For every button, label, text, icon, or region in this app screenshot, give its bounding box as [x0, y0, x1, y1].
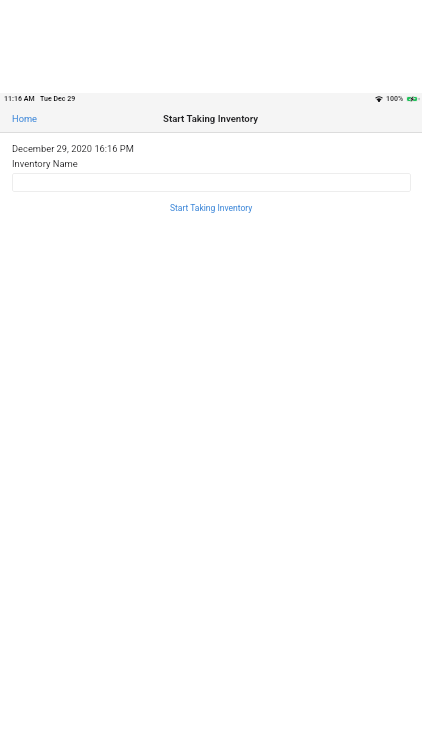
staticText: Inventory Name [12, 158, 78, 169]
staticText: 100% [386, 95, 404, 103]
staticText: Home [12, 113, 38, 124]
button[interactable]: Home [0, 109, 50, 128]
staticText: December 29, 2020 16:16 PM [12, 143, 134, 154]
staticText: 11:16 AM [4, 95, 35, 103]
staticText: Tue Dec 29 [40, 95, 76, 103]
button[interactable]: Start Taking Inventory [160, 201, 263, 215]
button[interactable]: Inventory name input [12, 173, 411, 192]
staticText: Start Taking Inventory [163, 113, 259, 124]
staticText: Start Taking Inventory [170, 203, 253, 213]
